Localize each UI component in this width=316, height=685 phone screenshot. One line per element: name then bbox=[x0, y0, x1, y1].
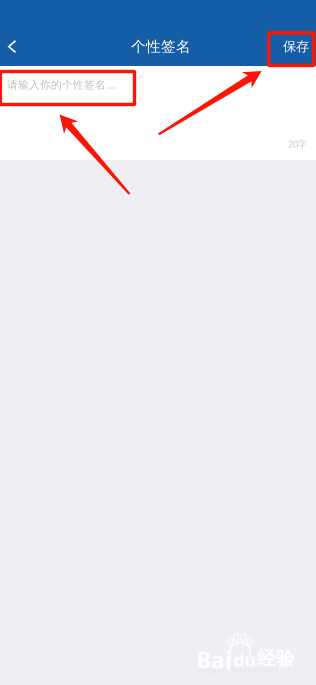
staticText: 经验 bbox=[257, 647, 295, 670]
staticText: du bbox=[233, 648, 255, 671]
button[interactable]: 保存 bbox=[274, 30, 316, 62]
staticText: 保存 bbox=[283, 38, 309, 55]
staticText: 20字 bbox=[288, 138, 307, 150]
staticText: jingyan.baidu.com bbox=[196, 663, 278, 675]
staticText: 请输入你的个性签名... bbox=[7, 77, 115, 92]
staticText: 个性签名 bbox=[131, 37, 191, 55]
button[interactable]: Back bbox=[0, 32, 31, 62]
button[interactable]: 请输入你的个性签名... bbox=[0, 67, 316, 102]
staticText: Bai bbox=[196, 645, 232, 675]
